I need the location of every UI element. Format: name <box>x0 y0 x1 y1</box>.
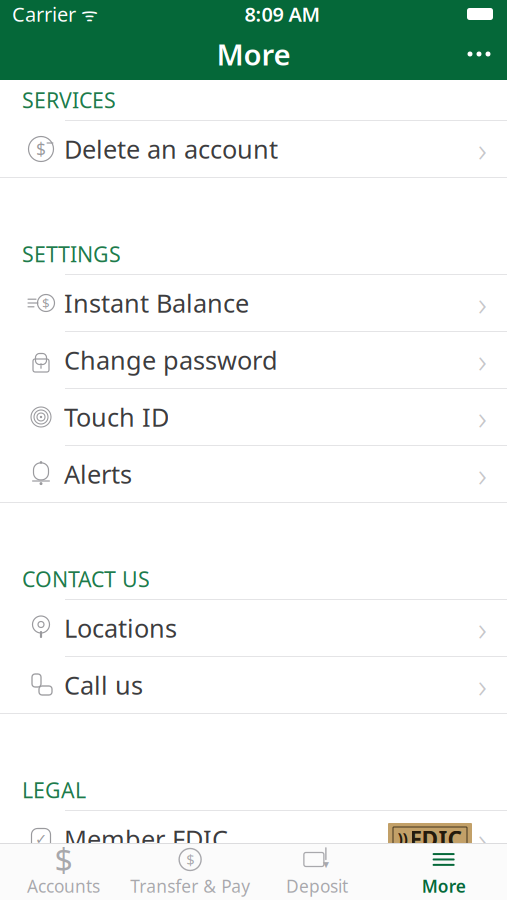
staticText: Locations <box>64 611 177 645</box>
staticText: Touch ID <box>64 400 169 434</box>
staticText: › <box>478 452 487 496</box>
staticText: Member FDIC <box>64 822 228 856</box>
staticText: 8:09 AM <box>244 1 320 27</box>
staticText: CONTACT US <box>22 565 150 593</box>
staticText: › <box>478 338 487 382</box>
staticText: $ <box>36 137 46 160</box>
staticText: )) <box>397 828 407 850</box>
staticText: FDIC <box>409 824 462 854</box>
button[interactable]: More <box>380 844 507 900</box>
staticText: Change password <box>64 343 278 377</box>
staticText: Transfer & Pay <box>130 874 250 897</box>
button[interactable]: Locations <box>0 600 507 656</box>
staticText: › <box>478 127 487 171</box>
staticText: $ <box>54 838 72 881</box>
staticText: › <box>478 395 487 439</box>
staticText: › <box>478 817 487 861</box>
button[interactable]: $ <box>0 844 127 900</box>
button[interactable]: $ <box>127 844 254 900</box>
staticText: Deposit <box>286 874 348 897</box>
staticText: Accounts <box>27 874 100 897</box>
button[interactable]: $ <box>0 121 507 177</box>
staticText: Carrier <box>12 1 76 27</box>
button[interactable]: ▾ <box>253 844 380 900</box>
staticText: More <box>216 34 290 73</box>
staticText: ᯤ <box>76 2 98 26</box>
staticText: SERVICES <box>22 86 116 114</box>
staticText: More <box>422 874 466 897</box>
staticText: Delete an account <box>64 132 278 166</box>
staticText: Instant Balance <box>64 286 249 320</box>
staticText: LEGAL <box>22 776 86 804</box>
button[interactable]: Touch ID <box>0 389 507 445</box>
staticText: SETTINGS <box>22 240 121 268</box>
button[interactable]: ✓ <box>0 811 507 867</box>
staticText: › <box>478 663 487 707</box>
staticText: Call us <box>64 668 143 702</box>
button[interactable]: Alerts <box>0 446 507 502</box>
staticText: › <box>478 606 487 650</box>
staticText: ▾ <box>323 857 329 871</box>
staticText: › <box>478 281 487 325</box>
button[interactable]: Change password <box>0 332 507 388</box>
button[interactable]: $ <box>0 275 507 331</box>
staticText: $ <box>42 294 50 312</box>
staticText: Alerts <box>64 457 132 491</box>
staticText: $ <box>186 850 194 869</box>
staticText: ✓ <box>35 831 47 847</box>
button[interactable]: More options <box>451 32 507 76</box>
button[interactable]: Call us <box>0 657 507 713</box>
